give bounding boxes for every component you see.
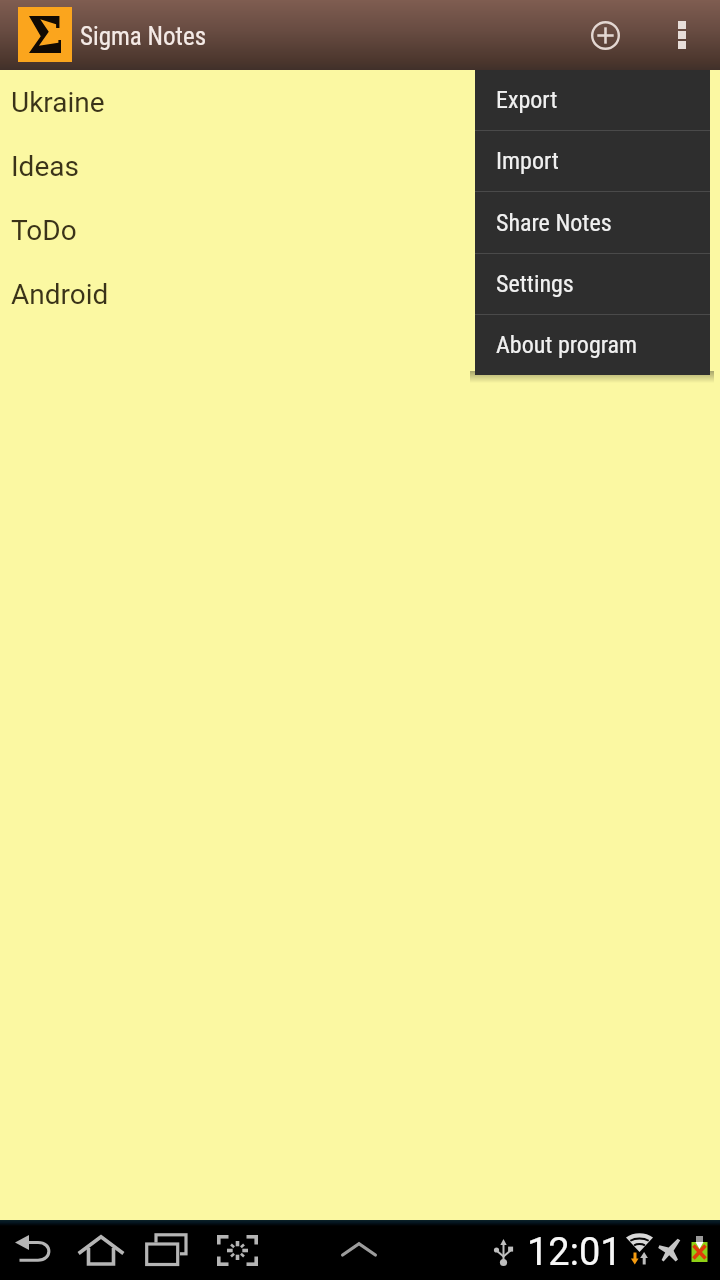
staticText: Ukraine: [11, 86, 105, 119]
button[interactable]: Ideas: [0, 134, 720, 198]
button[interactable]: Settings: [475, 254, 710, 314]
button[interactable]: Ukraine: [0, 70, 720, 134]
staticText: Sigma Notes: [80, 22, 207, 51]
button[interactable]: More options: [652, 0, 712, 70]
staticText: About program: [496, 331, 638, 359]
button[interactable]: Add note: [573, 0, 637, 70]
staticText: Import: [496, 147, 559, 175]
button[interactable]: Export: [475, 70, 710, 130]
button[interactable]: ToDo: [0, 198, 720, 262]
button[interactable]: Import: [475, 131, 710, 191]
staticText: 12:01: [527, 1230, 622, 1275]
button[interactable]: Screenshot: [205, 1220, 269, 1280]
button[interactable]: Share Notes: [475, 192, 710, 253]
button[interactable]: About program: [475, 315, 710, 375]
staticText: Android: [11, 278, 109, 311]
button[interactable]: Home: [69, 1220, 133, 1280]
button[interactable]: Show navigation: [327, 1220, 391, 1280]
button[interactable]: Sigma Notes: [18, 0, 378, 70]
button[interactable]: Android: [0, 262, 720, 326]
staticText: Export: [496, 86, 558, 114]
staticText: ToDo: [11, 214, 77, 247]
button[interactable]: Recent apps: [135, 1220, 199, 1280]
button[interactable]: Back: [2, 1220, 66, 1280]
staticText: Share Notes: [496, 209, 612, 237]
staticText: Settings: [496, 270, 574, 298]
staticText: Ideas: [11, 150, 79, 183]
